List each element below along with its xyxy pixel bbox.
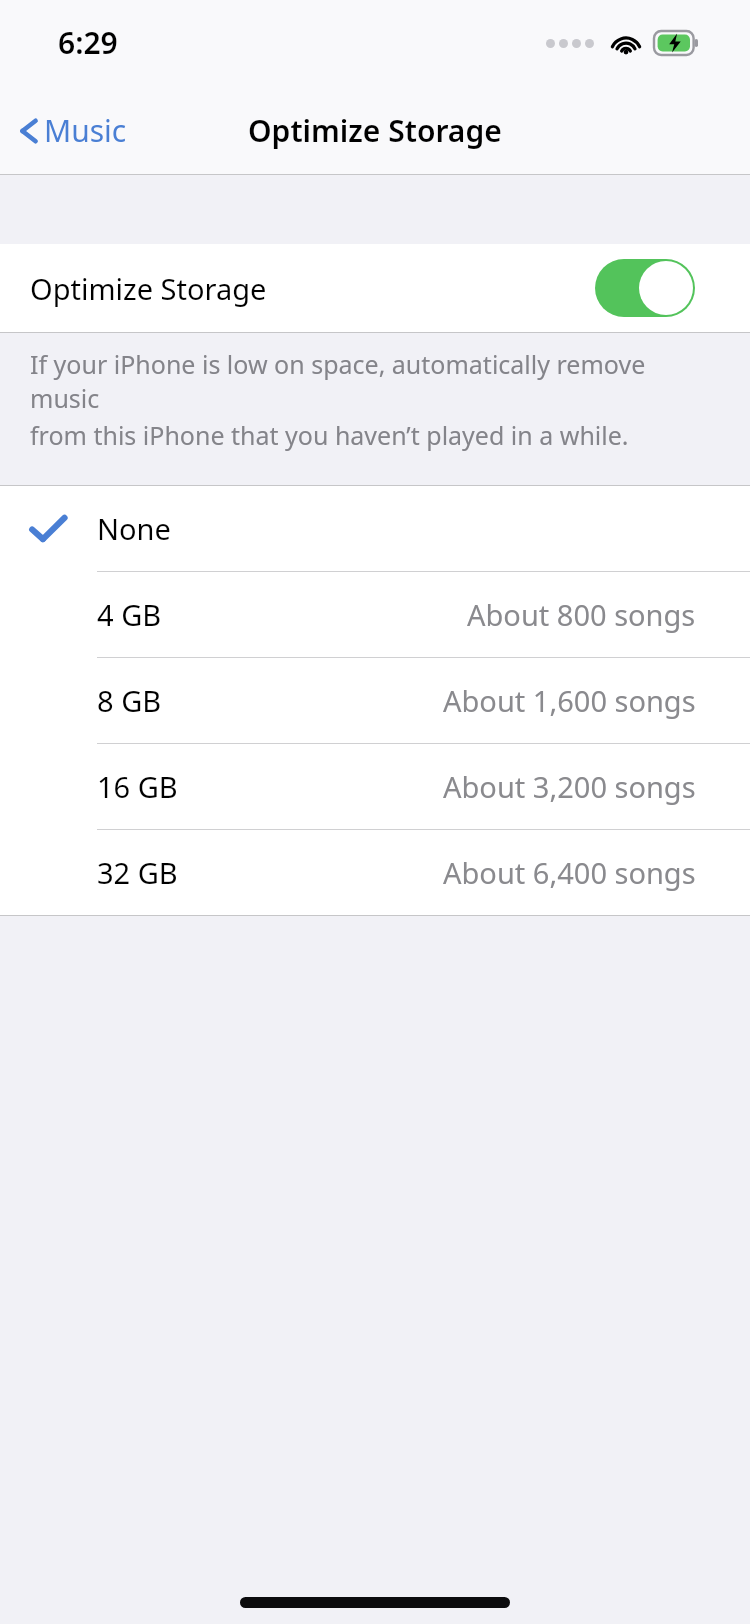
staticText: 32 GB: [97, 853, 178, 892]
staticText: 4 GB: [97, 595, 162, 634]
button[interactable]: Music: [10, 104, 135, 157]
button[interactable]: None: [0, 486, 750, 571]
button[interactable]: 4 GB: [0, 572, 750, 657]
staticText: 8 GB: [97, 681, 162, 720]
staticText: About 3,200 songs: [443, 767, 696, 806]
button[interactable]: Optimize Storage toggle, on: [595, 259, 695, 317]
button[interactable]: Optimize Storage: [0, 244, 750, 332]
staticText: Music: [44, 110, 127, 151]
button[interactable]: 16 GB: [0, 744, 750, 829]
staticText: 6:29: [58, 22, 118, 63]
button[interactable]: 32 GB: [0, 830, 750, 915]
staticText: None: [97, 509, 171, 548]
staticText: About 800 songs: [467, 595, 696, 634]
staticText: 16 GB: [97, 767, 178, 806]
staticText: from this iPhone that you haven’t played…: [30, 418, 629, 452]
staticText: Optimize Storage: [30, 269, 267, 308]
staticText: Optimize Storage: [248, 110, 502, 151]
staticText: If your iPhone is low on space, automati…: [30, 347, 720, 415]
button[interactable]: 8 GB: [0, 658, 750, 743]
staticText: About 1,600 songs: [443, 681, 696, 720]
staticText: About 6,400 songs: [443, 853, 696, 892]
